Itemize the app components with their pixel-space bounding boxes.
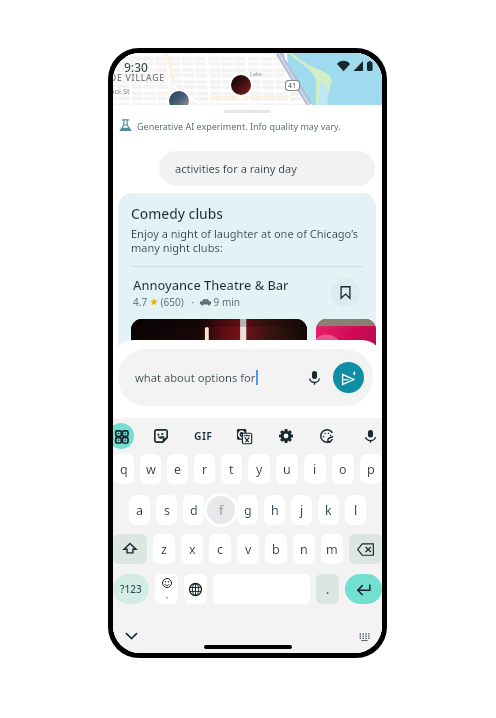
staticText: Lake — [250, 70, 263, 77]
button[interactable]: Enter — [345, 574, 382, 604]
staticText: s — [164, 502, 170, 519]
button[interactable]: Translate — [232, 424, 256, 448]
staticText: c — [217, 541, 224, 558]
staticText: z — [161, 541, 167, 558]
staticText: a — [136, 502, 144, 519]
staticText: o — [339, 461, 347, 478]
button[interactable]: j — [291, 495, 312, 525]
button[interactable]: r — [194, 454, 215, 484]
staticText: y — [256, 461, 263, 478]
button[interactable]: Send — [333, 362, 364, 393]
button[interactable]: e — [167, 454, 188, 484]
button[interactable]: Handwriting — [354, 626, 374, 646]
button[interactable]: i — [304, 454, 326, 484]
button[interactable]: p — [360, 454, 382, 484]
button[interactable]: ?123 — [113, 574, 149, 604]
staticText: p — [367, 461, 375, 478]
staticText: n — [300, 541, 308, 558]
button[interactable]: Language — [184, 574, 207, 604]
staticText: 4.7 — [133, 295, 150, 309]
button[interactable]: Shift — [113, 534, 147, 564]
button[interactable]: z — [153, 534, 175, 564]
staticText: ool St — [113, 86, 130, 96]
button[interactable]: . — [316, 574, 339, 604]
staticText: GIF — [194, 429, 213, 443]
staticText: . — [326, 581, 330, 597]
button[interactable]: q — [113, 454, 134, 484]
button[interactable]: GIF — [191, 424, 215, 448]
button[interactable]: g — [237, 495, 258, 525]
staticText: k — [325, 502, 332, 519]
staticText: l — [354, 502, 358, 519]
staticText: 41 — [288, 81, 297, 90]
button[interactable]: a — [129, 495, 150, 525]
button[interactable]: Emoji — [155, 574, 178, 604]
button[interactable]: h — [264, 495, 285, 525]
button[interactable]: u — [276, 454, 298, 484]
button[interactable]: y — [248, 454, 270, 484]
staticText: d — [190, 502, 198, 519]
staticText: Comedy clubs — [131, 204, 224, 223]
button[interactable]: t — [221, 454, 242, 484]
button[interactable]: s — [156, 495, 177, 525]
staticText: f — [219, 502, 224, 519]
staticText: r — [202, 461, 208, 478]
button[interactable] — [210, 495, 231, 525]
staticText: u — [283, 461, 291, 478]
staticText: 9 min — [211, 295, 241, 309]
button[interactable]: Comedy clubs — [118, 193, 376, 363]
button[interactable]: Settings — [274, 424, 298, 448]
staticText: e — [174, 461, 182, 478]
staticText: b — [272, 541, 280, 558]
button[interactable]: Backspace — [349, 534, 382, 564]
staticText: (650) · — [158, 295, 200, 309]
button[interactable]: Hide keyboard — [121, 626, 141, 646]
staticText: q — [120, 461, 128, 478]
button[interactable]: c — [209, 534, 231, 564]
button[interactable]: b — [265, 534, 287, 564]
staticText: what about options for — [135, 370, 256, 385]
button[interactable]: m — [321, 534, 343, 564]
staticText: g — [244, 502, 252, 519]
staticText: , — [166, 588, 169, 600]
button[interactable]: k — [318, 495, 339, 525]
button[interactable]: n — [293, 534, 315, 564]
staticText: v — [245, 541, 252, 558]
button[interactable]: w — [140, 454, 161, 484]
staticText: ?123 — [120, 582, 142, 596]
button[interactable]: Theme — [315, 424, 339, 448]
button[interactable]: l — [345, 495, 366, 525]
staticText: i — [313, 461, 317, 478]
button[interactable]: Voice — [358, 424, 382, 448]
button[interactable]: v — [237, 534, 259, 564]
button[interactable]: Voice input — [302, 366, 326, 390]
staticText: x — [189, 541, 196, 558]
staticText: m — [326, 541, 338, 558]
staticText: Generative AI experiment. Info quality m… — [137, 120, 341, 132]
staticText: w — [146, 461, 156, 478]
staticText: Enjoy a night of laughter at one of Chic… — [131, 226, 363, 256]
button[interactable]: x — [181, 534, 203, 564]
staticText: t — [229, 461, 234, 478]
staticText: activities for a rainy day — [175, 161, 297, 176]
staticText: h — [271, 502, 279, 519]
button[interactable]: Save — [331, 278, 360, 307]
button[interactable]: Stickers — [149, 424, 173, 448]
button[interactable]: Apps — [113, 423, 134, 449]
button[interactable]: activities for a rainy day — [159, 151, 375, 186]
staticText: Annoyance Theatre & Bar — [133, 276, 289, 293]
button[interactable]: d — [183, 495, 204, 525]
button[interactable]: o — [332, 454, 354, 484]
staticText: j — [300, 502, 304, 519]
staticText: DE VILLAGE — [113, 72, 165, 84]
staticText: 9:30 — [124, 59, 148, 75]
